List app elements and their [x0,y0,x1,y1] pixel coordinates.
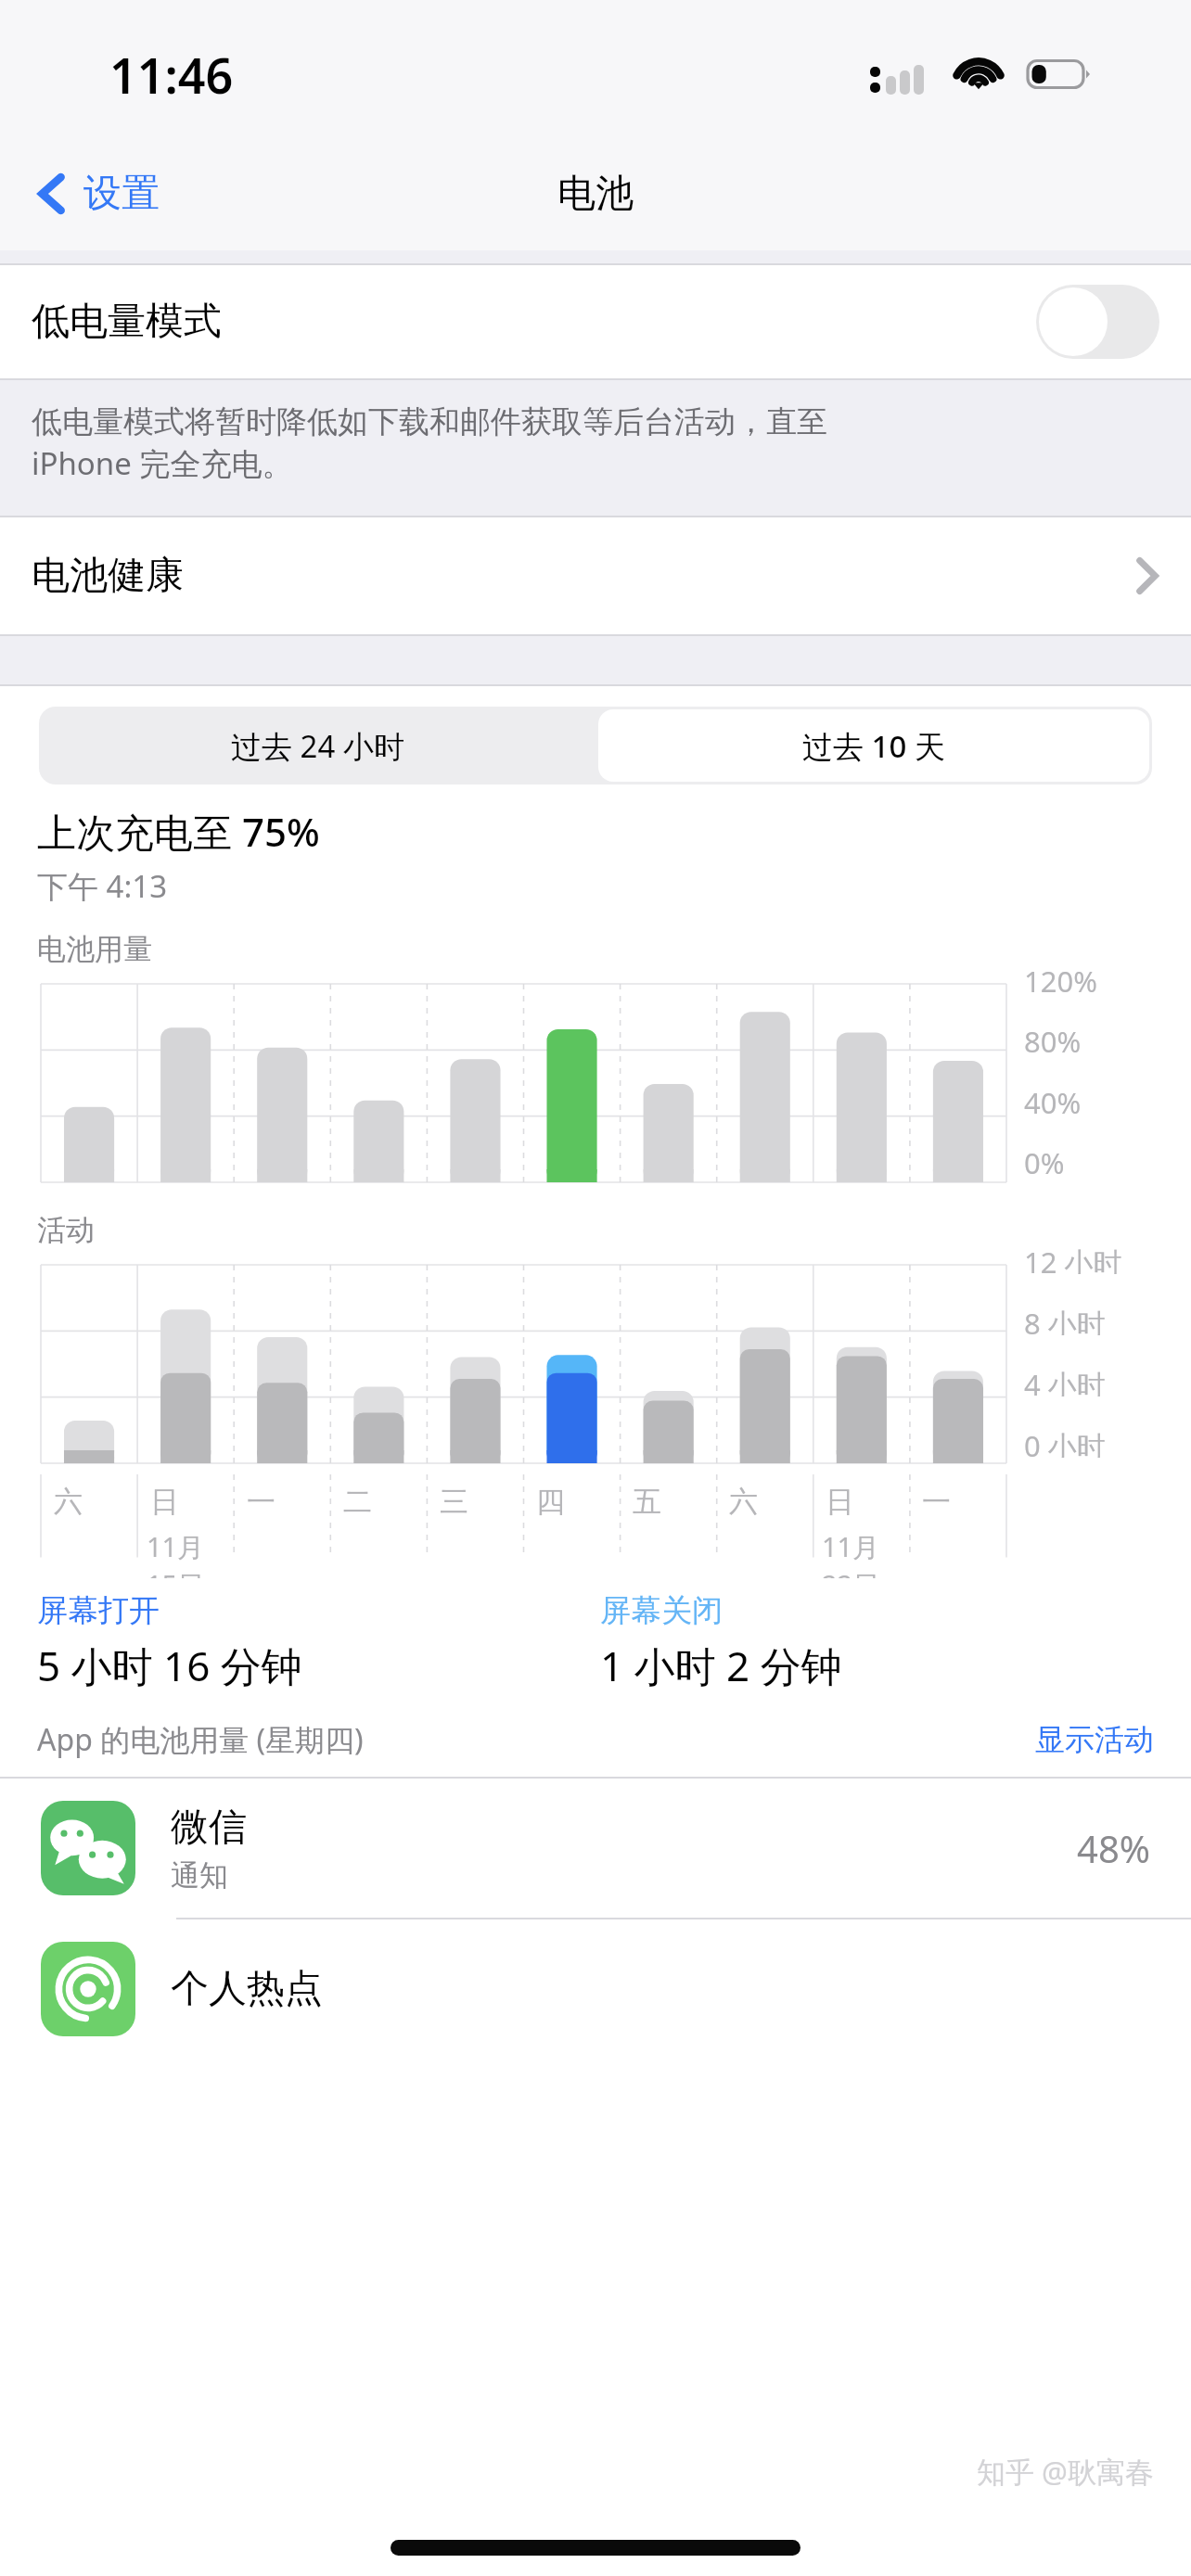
button[interactable]: 微信 [0,1779,1191,1918]
staticText: 通知 [171,1857,228,1894]
staticText: 活动 [37,1212,95,1248]
staticText: 电池健康 [32,552,1135,600]
other: Battery [1028,54,1095,95]
staticText: 低电量模式 [32,298,1036,346]
button[interactable]: 显示活动 [1035,1721,1154,1758]
button[interactable]: 电池健康 [0,517,1191,634]
staticText: 8 小时 [1024,1304,1106,1335]
staticText: 一 [922,1484,951,1520]
staticText: 知乎 @耿寓春 [977,2452,1154,2491]
staticText: 三 [440,1484,468,1520]
staticText: 下午 4:13 [37,865,168,907]
staticText: 1 小时 2 分钟 [600,1638,842,1693]
staticText: 显示活动 [1035,1721,1154,1758]
staticText: 过去 10 天 [802,725,945,767]
button[interactable]: 低电量模式 [0,265,1191,378]
staticText: 4 小时 [1024,1365,1106,1396]
staticText: 11:46 [109,42,234,108]
staticText: 微信 [171,1804,247,1852]
other: Wi-Fi [952,54,1005,95]
staticText: 过去 24 小时 [231,725,404,767]
staticText: 六 [54,1484,83,1520]
button[interactable]: 过去 24 小时 [39,707,595,784]
other: 个人热点 [41,1942,135,2036]
staticText: 80% [1024,1022,1082,1053]
button[interactable]: 过去 10 天 [598,709,1149,782]
staticText: App 的电池用量 (星期四) [37,1719,1035,1760]
staticText: 日 [826,1484,854,1520]
staticText: 电池 [557,170,634,218]
staticText: 屏幕关闭 [600,1591,723,1630]
staticText: 低电量模式将暂时降低如下载和邮件获取等后台活动，直至 iPhone 完全充电。 [32,402,827,484]
staticText: 二 [343,1484,372,1520]
staticText: 四 [536,1484,565,1520]
staticText: 40% [1024,1083,1082,1115]
staticText: 六 [729,1484,758,1520]
staticText: 设置 [83,170,160,218]
staticText: 12 小时 [1024,1243,1122,1274]
staticText: 11月15日 [147,1528,234,1578]
staticText: 0% [1024,1143,1065,1175]
button[interactable]: 低电量模式开关 [1036,285,1159,359]
staticText: 0 小时 [1024,1426,1106,1458]
staticText: 5 小时 16 分钟 [37,1638,302,1693]
staticText: 屏幕打开 [37,1591,160,1630]
staticText: 日 [150,1484,179,1520]
staticText: 五 [633,1484,661,1520]
other: 微信 [41,1801,135,1895]
staticText: 电池用量 [37,931,152,967]
button[interactable]: 设置 [32,166,160,222]
staticText: 48% [1077,1823,1150,1873]
staticText: 11月22日 [822,1528,909,1578]
staticText: 一 [247,1484,275,1520]
button[interactable]: 屏幕关闭 [600,1591,1191,1693]
button[interactable]: 屏幕打开 [37,1591,600,1693]
staticText: 120% [1024,962,1097,993]
staticText: 上次充电至 75% [37,805,320,858]
staticText: 个人热点 [171,1965,323,2013]
button[interactable]: 个人热点 [0,1919,1191,2059]
